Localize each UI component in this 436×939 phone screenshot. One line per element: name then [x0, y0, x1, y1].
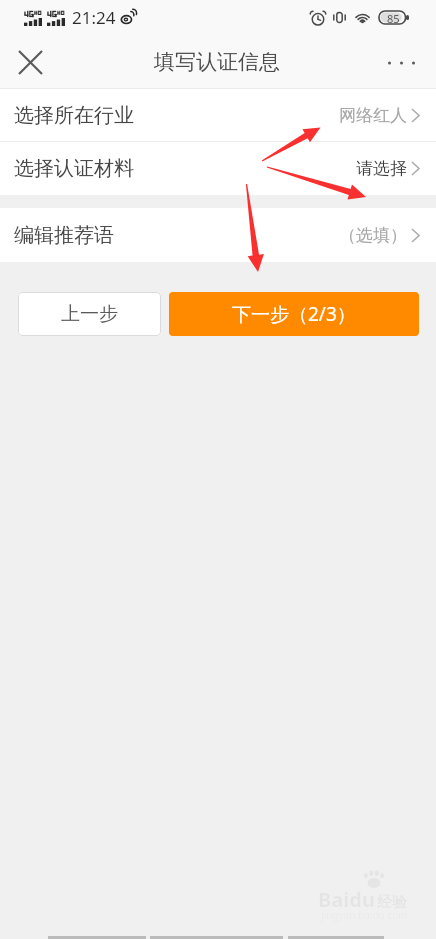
button[interactable]: 编辑推荐语 — [0, 208, 436, 262]
staticText: 上一步 — [61, 302, 118, 326]
button[interactable]: 上一步 — [18, 292, 161, 336]
staticText: 填写认证信息 — [154, 49, 280, 75]
staticText: 选择认证材料 — [14, 156, 134, 181]
staticText: Baidu — [318, 886, 375, 913]
button[interactable]: Close — [8, 40, 53, 85]
staticText: （选填） — [339, 225, 407, 246]
button[interactable]: 下一步（2/3） — [169, 292, 419, 336]
staticText: 请选择 — [356, 158, 407, 179]
staticText: 下一步（2/3） — [232, 301, 356, 327]
staticText: 85 — [387, 11, 400, 24]
staticText: 网络红人 — [339, 105, 407, 126]
staticText: 经验 — [377, 893, 407, 912]
staticText: 选择所在行业 — [14, 103, 134, 128]
button[interactable]: 选择认证材料 — [0, 142, 436, 195]
button[interactable]: 选择所在行业 — [0, 89, 436, 141]
button[interactable]: More options — [381, 40, 421, 85]
staticText: 21:24 — [72, 6, 116, 29]
staticText: 编辑推荐语 — [14, 223, 114, 248]
